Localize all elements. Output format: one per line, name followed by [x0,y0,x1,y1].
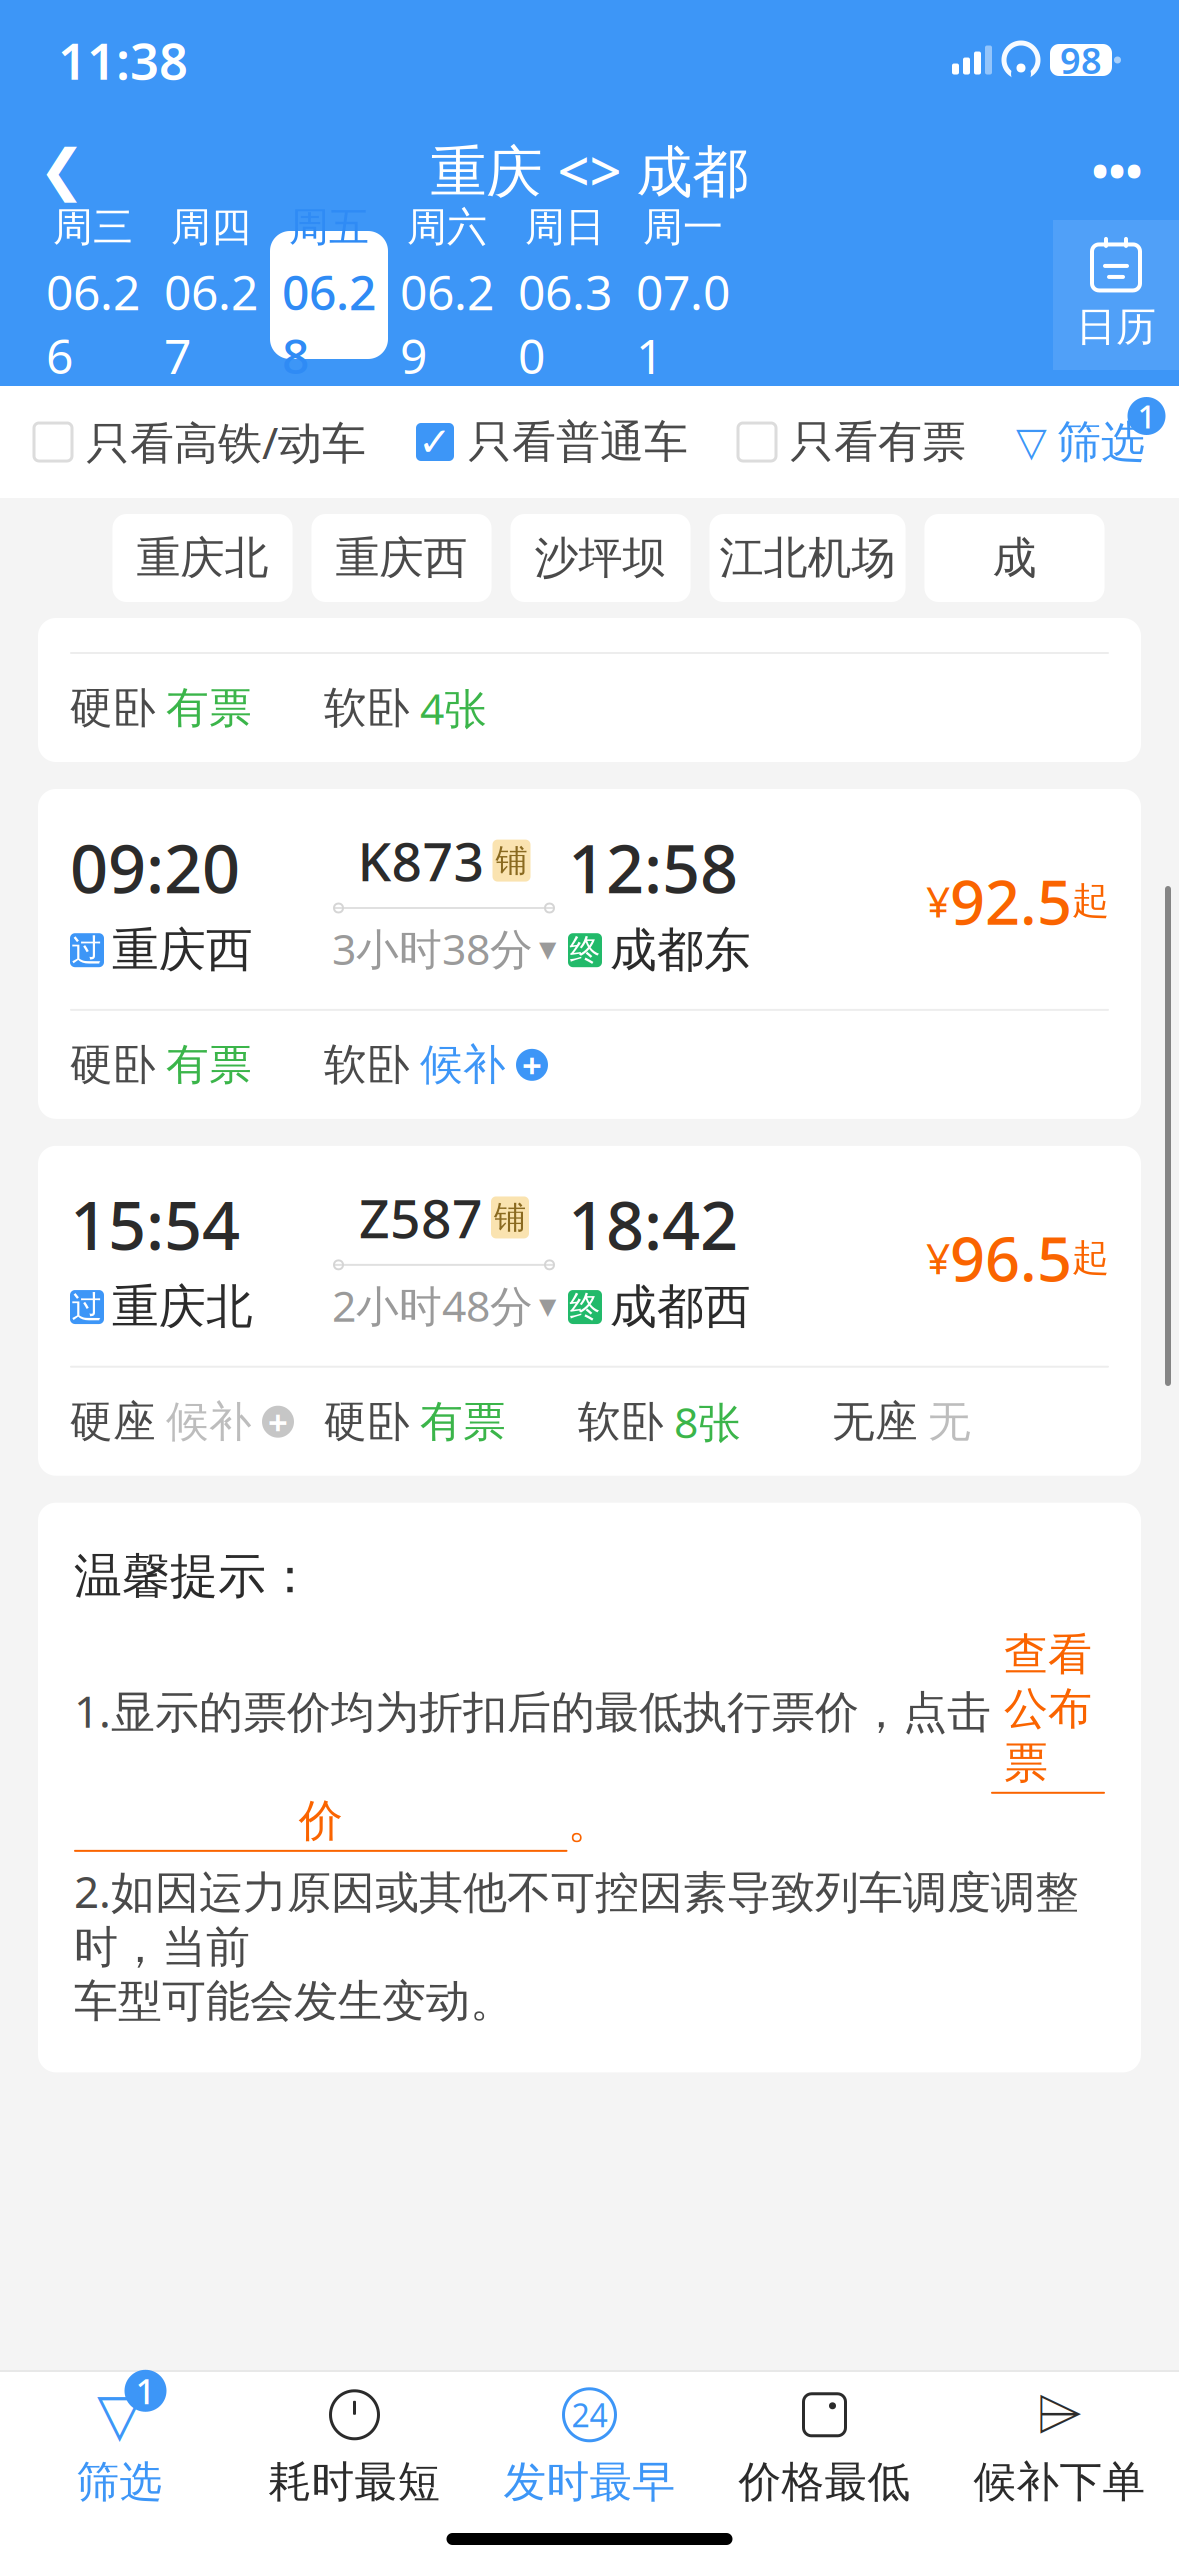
staticText: ▾ [539,1285,556,1325]
staticText: 2小时48分 [332,1277,533,1334]
staticText: 98 [1060,36,1102,84]
staticText: ▾ [539,929,556,968]
button[interactable]: 15:54 [38,1146,1141,1476]
staticText: 软卧 [324,1039,410,1091]
staticText: 发时最早 [503,2456,675,2508]
staticText: 候补下单 [973,2456,1145,2508]
staticText: 日历 [1076,302,1156,351]
button[interactable]: 价格最低 [707,2372,942,2522]
staticText: 筛选 [76,2456,162,2508]
staticText: 18:42 [568,1180,738,1268]
staticText: 周日 [525,203,605,252]
button[interactable]: 查看公布票 [991,1628,1105,1794]
staticText: 查看公布票 [1004,1628,1092,1790]
staticText: K873 [357,825,484,896]
staticText: 8张 [674,1393,741,1450]
staticText: 江北机场 [719,531,895,585]
staticText: 候补 [420,1039,506,1091]
staticText: 06.26 [46,260,140,387]
staticText: 12:58 [568,823,738,911]
staticText: 06.28 [282,260,376,387]
button[interactable]: 09:20 [38,789,1141,1119]
staticText: ⌲ [1036,2386,1082,2443]
staticText: 候补 [166,1395,252,1448]
button[interactable]: 只看有票 [738,415,966,469]
staticText: 周四 [171,203,251,252]
button[interactable]: 周一 [624,231,742,359]
staticText: ✓ [418,419,452,465]
staticText: 重庆北 [136,531,268,585]
staticText: 周六 [407,203,487,252]
staticText: 无 [928,1395,971,1448]
staticText: 。 [567,1796,611,1850]
staticText: 3小时38分 [332,920,533,977]
button[interactable]: 重庆西 [311,514,491,602]
staticText: 过 [71,931,102,969]
staticText: ¥ [926,1229,950,1286]
staticText: 24 [571,2393,607,2436]
staticText: ❮ [38,138,85,202]
button[interactable]: 成 [924,514,1104,602]
button[interactable]: ▽ [1016,415,1145,469]
button[interactable]: 价 [74,1794,567,1852]
staticText: 有票 [166,682,252,734]
staticText: 成都东 [610,921,751,979]
staticText: 4张 [420,680,487,736]
staticText: 硬座 [70,1395,156,1448]
button[interactable]: 周五 [270,231,388,359]
staticText: 96.5 [950,1217,1072,1298]
staticText: 价 [299,1794,343,1848]
staticText: 起 [1072,1235,1109,1281]
button[interactable]: 周四 [152,231,270,359]
button[interactable]: 重庆北 [112,514,292,602]
button[interactable]: ▽ [2,2372,237,2522]
staticText: 重庆北 [112,1278,253,1336]
button[interactable]: 只看高铁/动车 [34,413,366,471]
staticText: 无座 [832,1395,918,1448]
staticText: 2.如因运力原因或其他不可控因素导致列车调度调整时，当前 [74,1862,1079,1974]
staticText: 车型可能会发生变动。 [74,1974,514,2028]
button[interactable]: 更多 [1069,122,1165,218]
staticText: 终 [569,931,600,969]
staticText: 成都西 [610,1278,751,1336]
staticText: + [268,1399,288,1445]
staticText: 只看普通车 [468,415,688,469]
staticText: 15:54 [70,1180,240,1268]
button[interactable]: 返回 [14,122,110,218]
staticText: 09:20 [70,823,240,911]
staticText: 铺 [495,841,527,880]
staticText: 重庆 <> 成都 [430,133,748,207]
staticText: 11:38 [58,26,188,94]
staticText: 1 [135,2368,155,2414]
staticText: 有票 [420,1395,506,1448]
staticText: 成 [992,531,1036,585]
staticText: Z587 [359,1182,483,1253]
button[interactable]: 24 [472,2372,707,2522]
button[interactable]: 周日 [506,231,624,359]
staticText: 硬卧 [70,1039,156,1091]
staticText: 重庆西 [335,531,467,585]
staticText: 耗时最短 [268,2456,440,2508]
button[interactable]: 周三 [34,231,152,359]
staticText: 有票 [166,1039,252,1091]
button[interactable]: ⌲ [942,2372,1177,2522]
staticText: ¥ [926,873,950,929]
staticText: 重庆西 [112,921,253,979]
staticText: 起 [1072,878,1109,924]
button[interactable]: 江北机场 [709,514,905,602]
staticText: 1.显示的票价均为折扣后的最低执行票价，点击 [74,1681,991,1740]
button[interactable]: 日历 [1053,220,1179,370]
staticText: 07.01 [636,260,730,387]
button[interactable]: 耗时最短 [237,2372,472,2522]
staticText: 周一 [643,203,723,252]
staticText: 1 [1137,395,1155,437]
button[interactable]: ✓ [416,415,688,469]
staticText: 92.5 [950,860,1072,942]
staticText: 硬卧 [70,682,156,734]
staticText: 价格最低 [738,2456,910,2508]
button[interactable]: 周六 [388,231,506,359]
staticText: 筛选 [1057,415,1145,469]
staticText: ••• [1091,140,1142,200]
button[interactable]: 沙坪坝 [510,514,690,602]
staticText: 沙坪坝 [534,531,666,585]
